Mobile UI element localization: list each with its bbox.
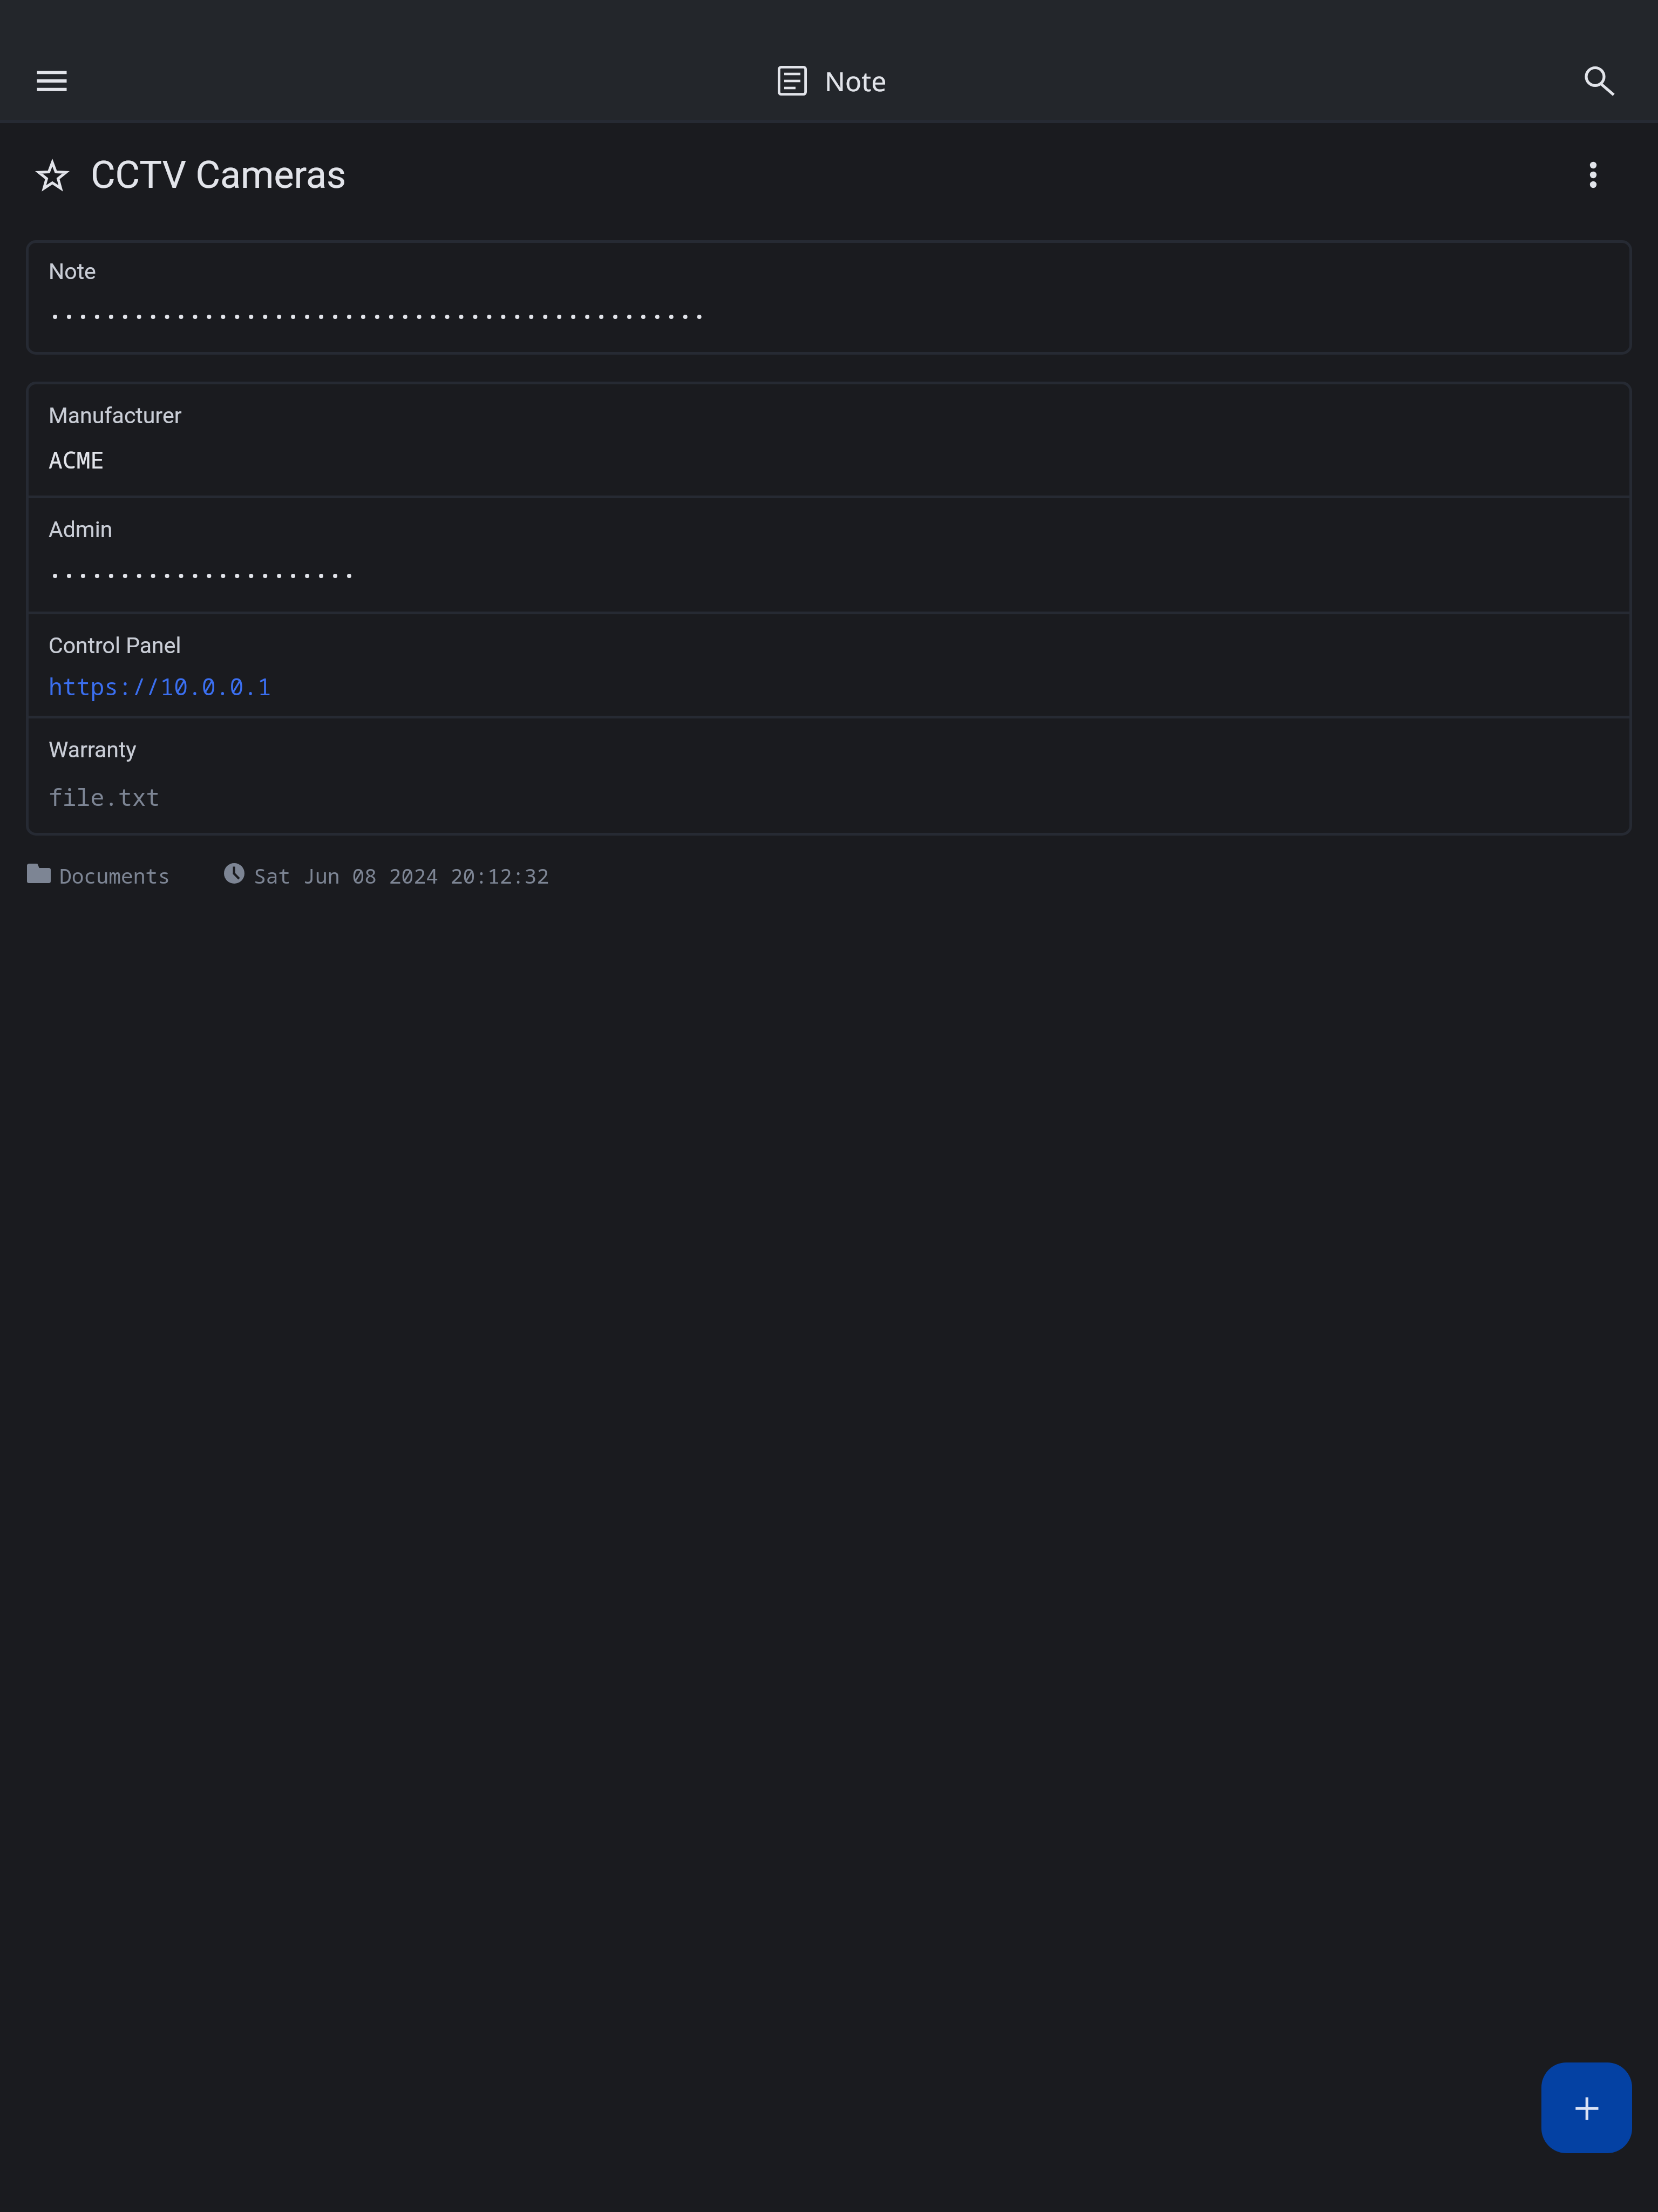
button[interactable]: Search [1563,44,1636,118]
button[interactable]: More options [1561,143,1626,207]
staticText: https://10.0.0.1 [49,670,271,702]
button[interactable]: Control Panel [26,612,1632,716]
button[interactable]: Note field [26,240,1632,355]
button[interactable]: Warranty [26,716,1632,836]
button[interactable]: Menu [15,44,89,118]
staticText: Note [825,63,887,99]
staticText: file.txt [49,781,160,813]
button[interactable]: Favourite [20,143,85,208]
button[interactable]: Admin [26,496,1632,612]
staticText: Control Panel [49,633,181,659]
staticText: Note [49,259,96,284]
button[interactable]: Add [1541,2062,1632,2153]
staticText: Sat Jun 08 2024 20:12:32 [254,861,549,890]
staticText: ACME [49,444,105,476]
staticText: Manufacturer [49,403,182,429]
staticText: Warranty [49,737,137,763]
staticText: Admin [49,517,113,542]
staticText: CCTV Cameras [91,153,346,197]
staticText: Documents [59,861,171,890]
button[interactable]: Manufacturer [26,382,1632,496]
